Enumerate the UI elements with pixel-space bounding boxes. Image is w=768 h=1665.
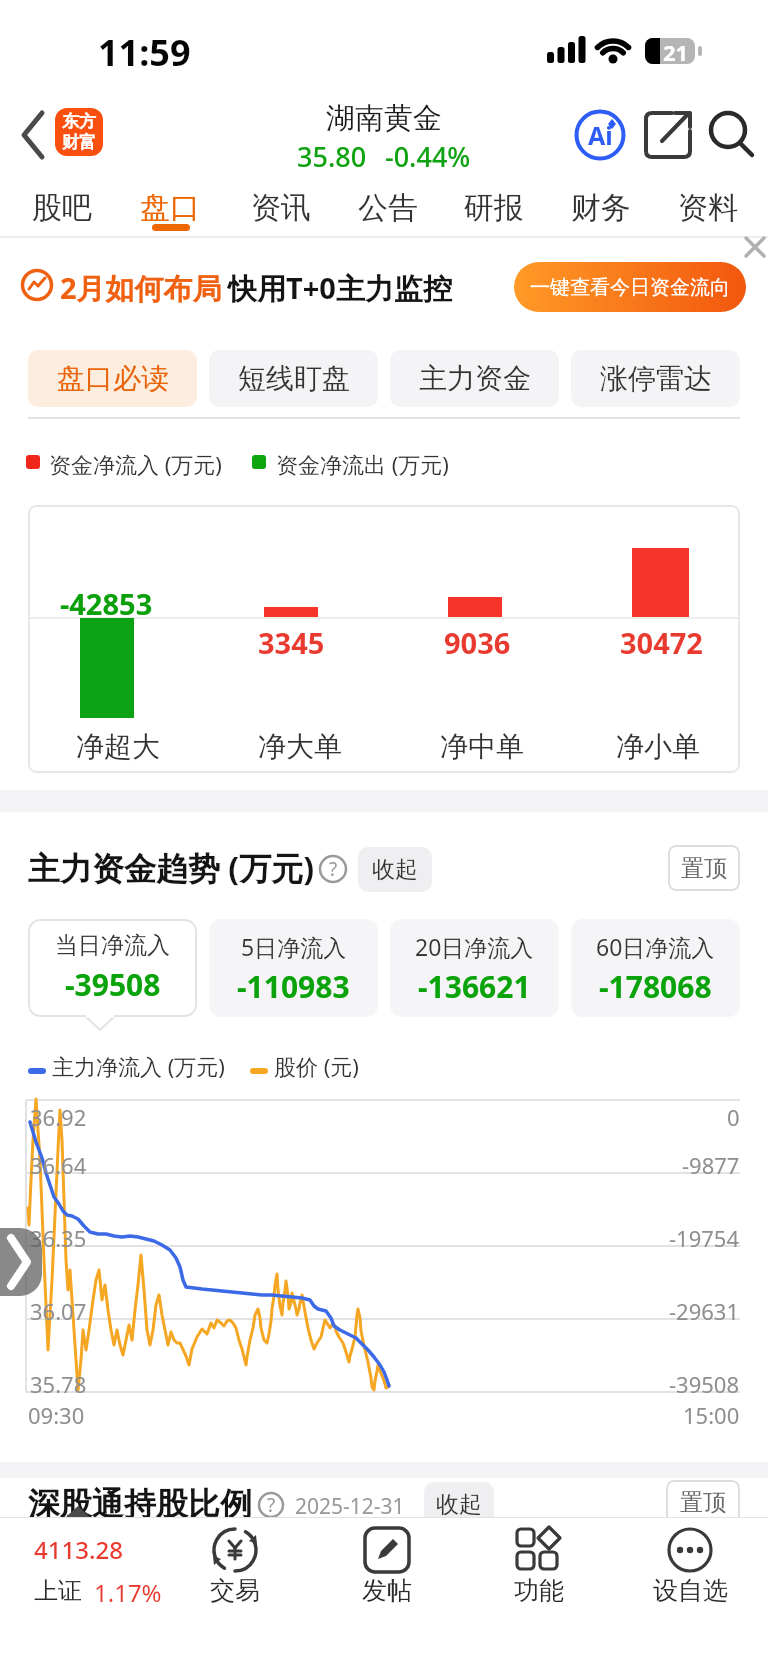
staticText: 上证: [34, 1576, 82, 1606]
staticText: 35.78: [30, 1369, 87, 1399]
staticText: -29631: [669, 1296, 740, 1326]
staticText: -0.44%: [385, 138, 471, 175]
button[interactable]: 财务: [546, 182, 656, 234]
staticText: 60日净流入: [596, 931, 715, 962]
staticText: 2025-12-31: [295, 1492, 405, 1521]
staticText: 当日净流入: [55, 931, 170, 960]
staticText: 涨停雷达: [600, 361, 712, 396]
staticText: 21: [663, 37, 689, 67]
button[interactable]: 研报: [439, 182, 549, 234]
staticText: 置顶: [681, 854, 727, 883]
button[interactable]: 主力资金: [390, 350, 559, 407]
staticText: 财富: [62, 132, 96, 153]
staticText: 11:59: [98, 28, 191, 77]
button[interactable]: 功能: [479, 1525, 599, 1606]
button[interactable]: Ai: [574, 109, 626, 161]
button[interactable]: 交易: [175, 1525, 295, 1606]
staticText: -19754: [669, 1223, 740, 1253]
staticText: 股吧: [32, 189, 92, 227]
button[interactable]: 短线盯盘: [209, 350, 378, 407]
staticText: 主力净流入 (万元): [52, 1051, 225, 1081]
staticText: 股价 (元): [274, 1051, 359, 1081]
staticText: 36.07: [30, 1296, 87, 1326]
staticText: 35.80: [297, 138, 367, 175]
staticText: 30472: [620, 623, 703, 662]
button[interactable]: 股吧: [7, 182, 117, 234]
staticText: 收起: [436, 1490, 482, 1519]
staticText: 快用T+0主力监控: [228, 268, 452, 308]
button[interactable]: 60日净流入: [571, 919, 740, 1017]
staticText: 资金净流入 (万元): [49, 449, 222, 479]
staticText: 东方: [62, 111, 96, 132]
staticText: 主力资金: [419, 361, 531, 396]
staticText: 4113.28: [34, 1533, 123, 1566]
button[interactable]: 4113.28: [34, 1533, 162, 1609]
staticText: 36.92: [30, 1102, 87, 1132]
staticText: -9877: [682, 1150, 740, 1180]
staticText: 9036: [444, 623, 511, 662]
staticText: 资讯: [251, 189, 311, 227]
button[interactable]: 资料: [653, 182, 763, 234]
staticText: 2月如何布局: [60, 268, 222, 308]
button[interactable]: 当日净流入: [28, 919, 197, 1017]
staticText: -42853: [60, 584, 153, 623]
button[interactable]: 置顶: [668, 845, 740, 891]
button[interactable]: [742, 238, 768, 260]
staticText: 盘口: [140, 189, 200, 227]
staticText: 3345: [258, 623, 325, 662]
staticText: -39508: [65, 964, 161, 1005]
button[interactable]: 资讯: [226, 182, 336, 234]
button[interactable]: 20日净流入: [390, 919, 559, 1017]
staticText: 5日净流入: [241, 931, 347, 962]
button[interactable]: 5日净流入: [209, 919, 378, 1017]
button[interactable]: [0, 1228, 42, 1296]
staticText: 20日净流入: [415, 931, 534, 962]
staticText: 公告: [358, 189, 418, 227]
staticText: -136621: [418, 966, 531, 1007]
staticText: 一键查看今日资金流向: [530, 275, 730, 300]
button[interactable]: [706, 106, 758, 158]
staticText: 设自选: [653, 1575, 728, 1606]
button[interactable]: 涨停雷达: [571, 350, 740, 407]
button[interactable]: 盘口必读: [28, 350, 197, 407]
staticText: ?: [329, 856, 338, 882]
staticText: 财务: [571, 189, 631, 227]
staticText: 09:30: [28, 1400, 85, 1430]
button[interactable]: 公告: [333, 182, 443, 234]
staticText: -110983: [237, 966, 350, 1007]
staticText: 收起: [372, 855, 418, 884]
staticText: 净大单: [258, 729, 342, 764]
staticText: -178068: [599, 966, 712, 1007]
staticText: 净中单: [440, 729, 524, 764]
button[interactable]: 设自选: [630, 1525, 750, 1606]
staticText: 深股通持股比例: [28, 1484, 252, 1524]
staticText: 36.35: [30, 1223, 87, 1253]
staticText: -39508: [669, 1369, 740, 1399]
button[interactable]: 发帖: [327, 1525, 447, 1606]
staticText: 0: [727, 1102, 740, 1132]
staticText: 主力资金趋势 (万元): [28, 846, 315, 890]
staticText: 盘口必读: [57, 361, 169, 396]
staticText: Ai: [588, 118, 613, 152]
button[interactable]: 东方: [55, 108, 103, 156]
staticText: 交易: [210, 1575, 260, 1606]
staticText: 短线盯盘: [238, 361, 350, 396]
staticText: 功能: [514, 1575, 564, 1606]
button[interactable]: 盘口: [115, 182, 225, 234]
button[interactable]: [18, 110, 48, 160]
staticText: 净小单: [616, 729, 700, 764]
staticText: ?: [267, 1492, 276, 1518]
button[interactable]: 2月如何布局: [0, 238, 768, 346]
staticText: 置顶: [680, 1488, 726, 1517]
button[interactable]: [644, 111, 692, 159]
staticText: 湖南黄金: [326, 100, 442, 137]
staticText: 资金净流出 (万元): [276, 449, 449, 479]
staticText: 15:00: [683, 1400, 740, 1430]
button[interactable]: 一键查看今日资金流向: [514, 262, 746, 312]
staticText: 发帖: [362, 1575, 412, 1606]
staticText: 研报: [464, 189, 524, 227]
staticText: 净超大: [76, 729, 160, 764]
button[interactable]: 收起: [358, 847, 432, 892]
staticText: 1.17%: [94, 1576, 162, 1609]
staticText: 资料: [678, 189, 738, 227]
